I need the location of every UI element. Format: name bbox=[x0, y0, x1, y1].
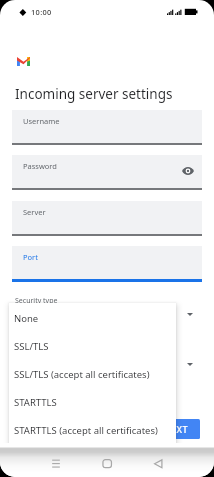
staticText: Port bbox=[23, 252, 38, 262]
button[interactable]: SSL/TLS (accept all certificates) bbox=[9, 359, 176, 387]
staticText: STARTTLS bbox=[14, 396, 57, 409]
staticText: SSL/TLS bbox=[14, 340, 49, 353]
button[interactable]: Password bbox=[12, 155, 202, 190]
button[interactable]: NEXT bbox=[152, 419, 200, 439]
other: Open dropdown bbox=[187, 313, 193, 316]
button[interactable]: STARTTLS bbox=[9, 387, 176, 415]
staticText: Password bbox=[23, 161, 57, 171]
staticText: Security type bbox=[15, 296, 58, 306]
other: Show password bbox=[182, 167, 194, 175]
button[interactable]: SSL/TLS bbox=[9, 331, 176, 359]
button[interactable]: Port bbox=[12, 246, 202, 282]
other: Open dropdown bbox=[187, 363, 193, 366]
staticText: 10:00 bbox=[31, 7, 52, 17]
staticText: Incoming server settings bbox=[15, 85, 173, 103]
staticText: STARTTLS (accept all certificates) bbox=[14, 424, 158, 437]
button[interactable]: STARTTLS (accept all certificates) bbox=[9, 415, 176, 443]
button[interactable]: Username bbox=[12, 110, 202, 145]
staticText: Username bbox=[23, 116, 60, 126]
button[interactable]: None bbox=[9, 303, 176, 331]
button[interactable]: Open dropdown bbox=[12, 344, 202, 378]
button[interactable]: Server bbox=[12, 201, 202, 236]
other: Navigation bar bbox=[0, 443, 214, 477]
staticText: Server bbox=[23, 207, 46, 217]
button[interactable]: Security type bbox=[12, 294, 202, 328]
staticText: None bbox=[14, 312, 39, 325]
staticText: SSL/TLS (accept all certificates) bbox=[14, 368, 150, 381]
staticText: NEXT bbox=[163, 423, 189, 435]
